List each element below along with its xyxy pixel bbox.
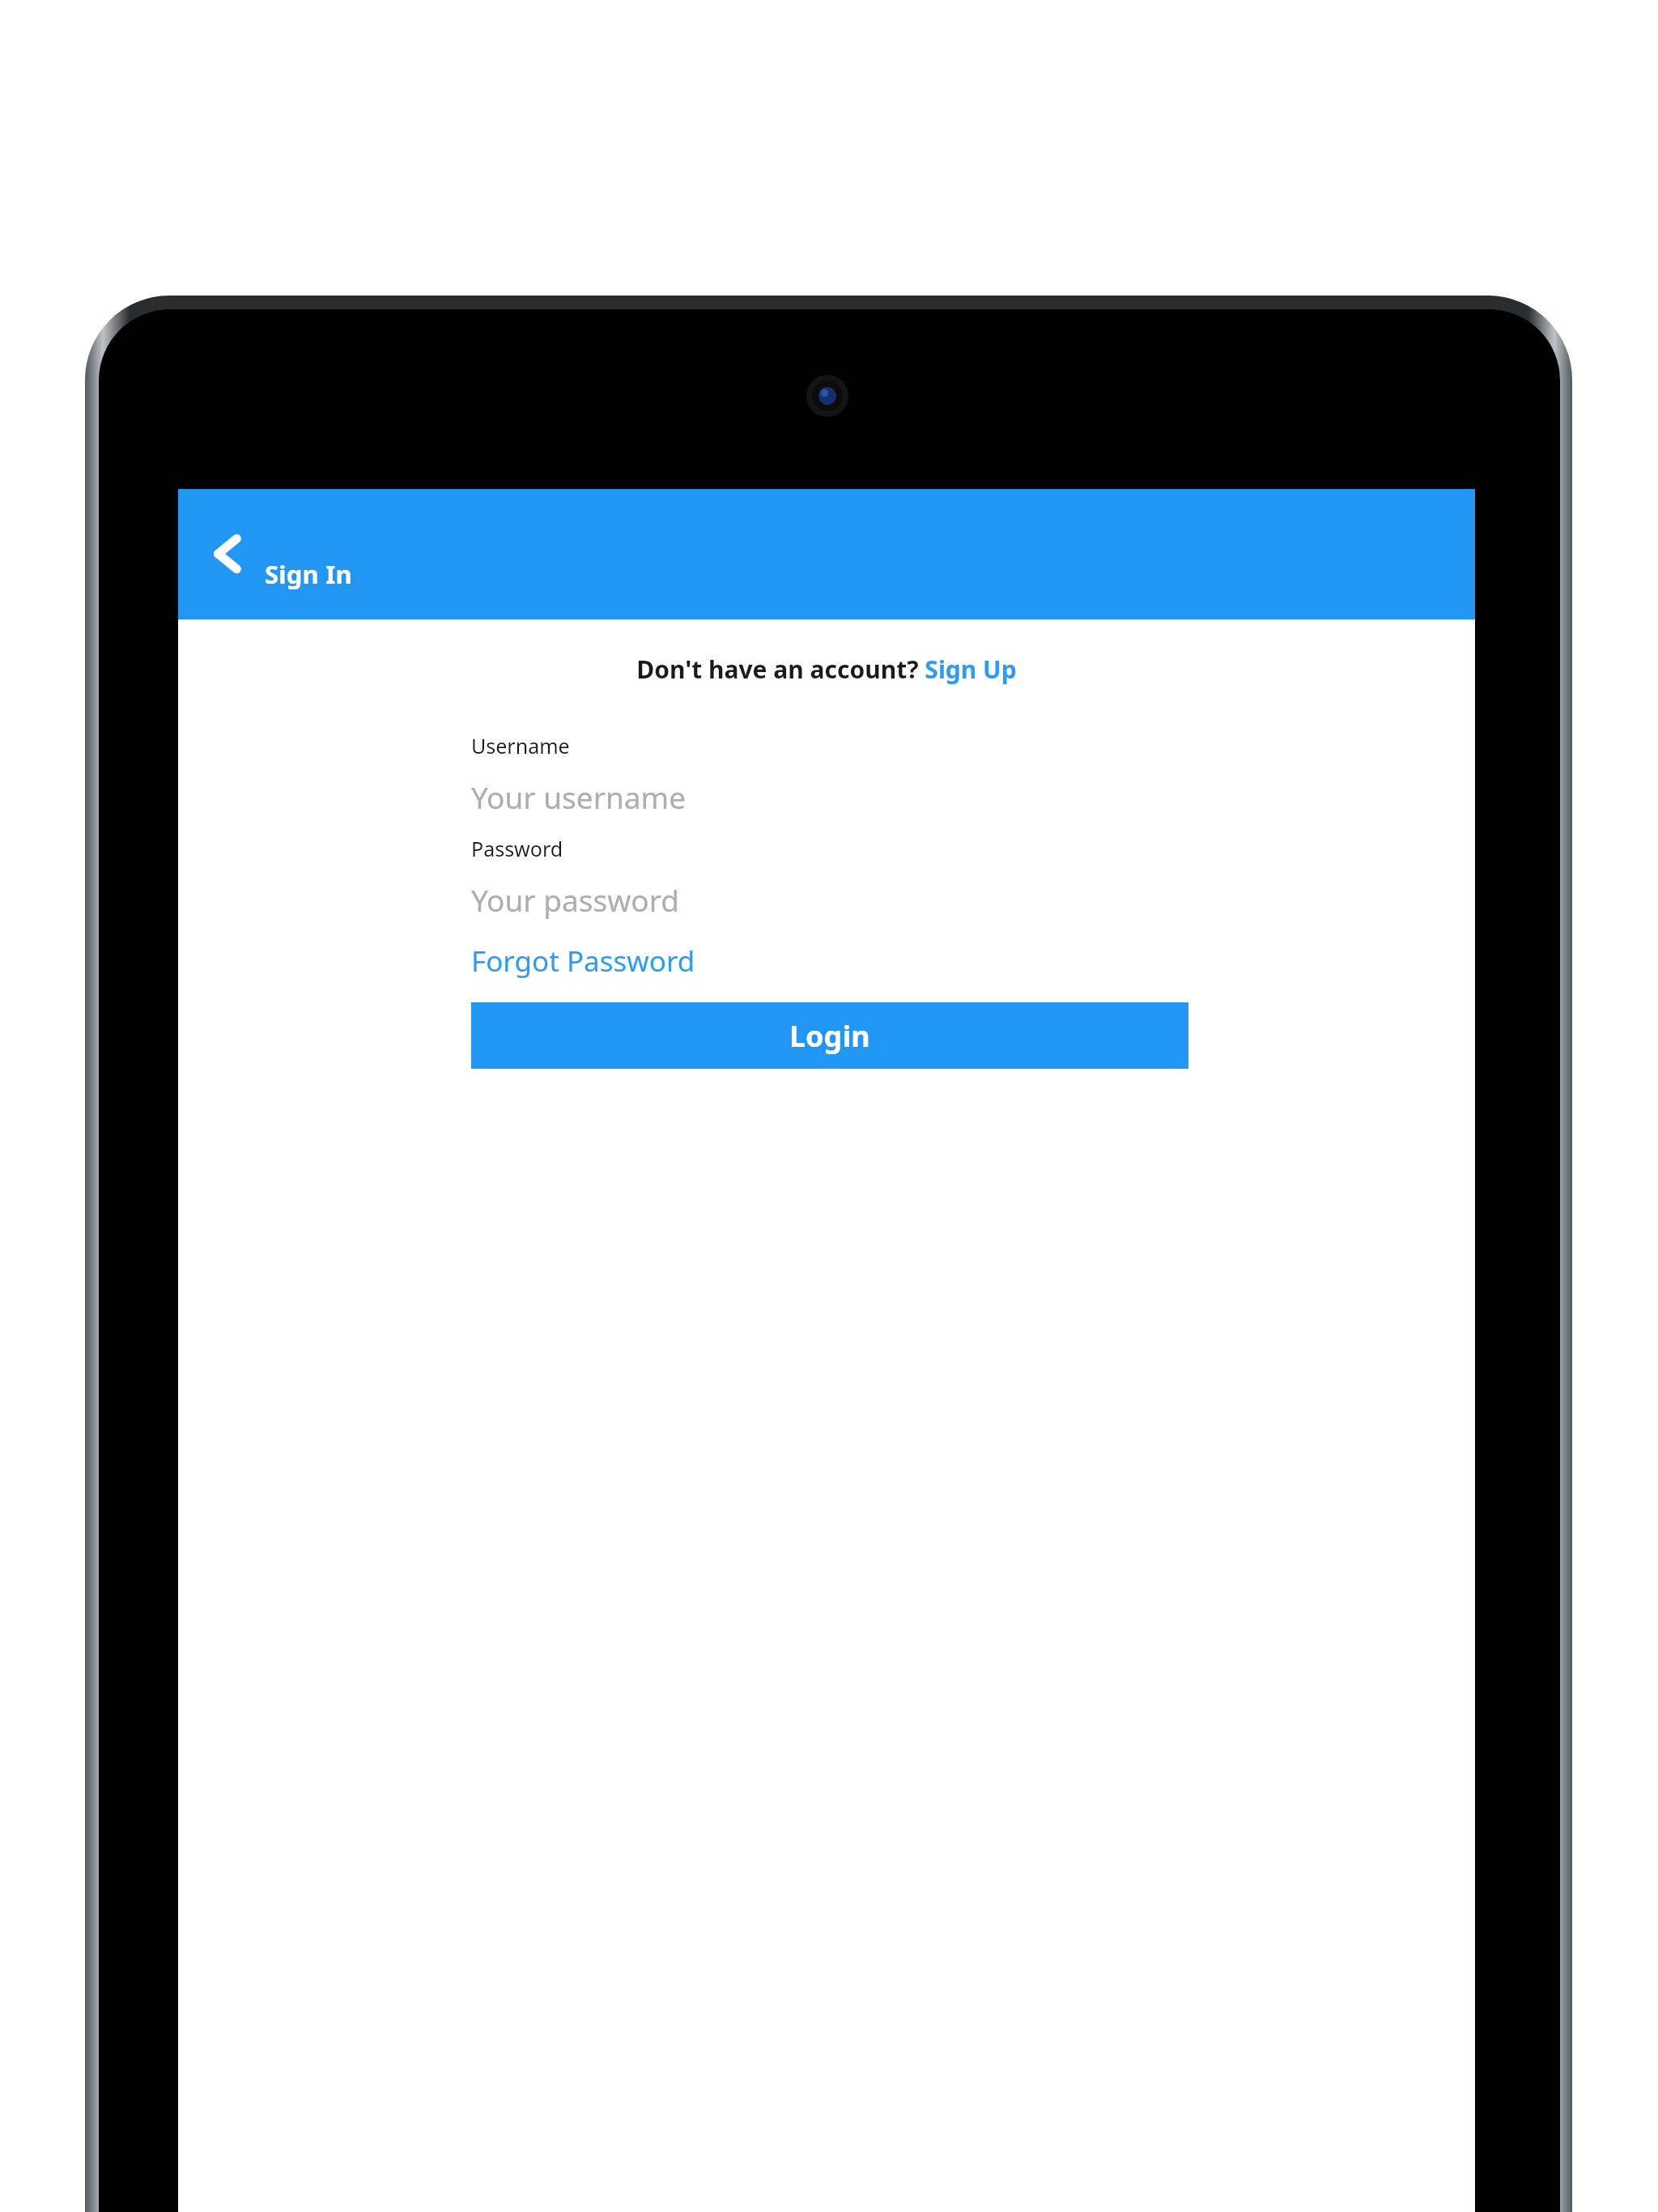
button[interactable]: Your username xyxy=(471,772,1188,822)
button[interactable]: Login xyxy=(471,1002,1188,1069)
staticText: Login xyxy=(789,1016,870,1056)
staticText: Sign In xyxy=(265,557,352,591)
button[interactable]: Your password xyxy=(471,874,1188,925)
staticText: Your password xyxy=(471,879,679,920)
button[interactable]: Forgot Password xyxy=(471,938,695,985)
staticText: Your username xyxy=(471,776,687,817)
button[interactable]: Don't have an account? Sign Up xyxy=(178,646,1475,691)
staticText: Forgot Password xyxy=(471,942,695,981)
staticText: Username xyxy=(471,732,570,759)
staticText: Password xyxy=(471,835,563,862)
button[interactable]: Back xyxy=(181,507,275,601)
staticText: Don't have an account? Sign Up xyxy=(636,653,1017,686)
